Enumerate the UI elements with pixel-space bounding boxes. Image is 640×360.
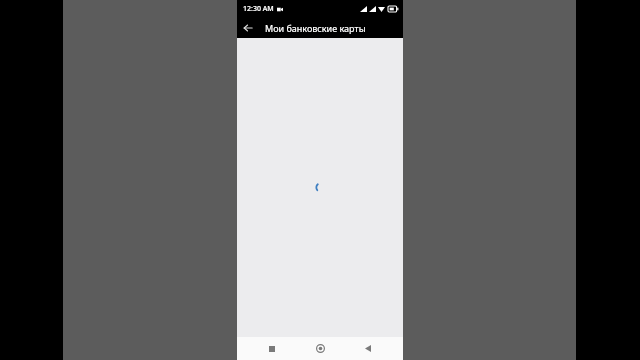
staticText: 12:30 AM [243,4,274,14]
staticText: Мои банковские карты [265,22,366,34]
button[interactable]: Back [355,337,381,360]
button[interactable]: Back [237,17,258,38]
button[interactable]: Recents [259,337,285,360]
button[interactable]: Home [307,337,333,360]
